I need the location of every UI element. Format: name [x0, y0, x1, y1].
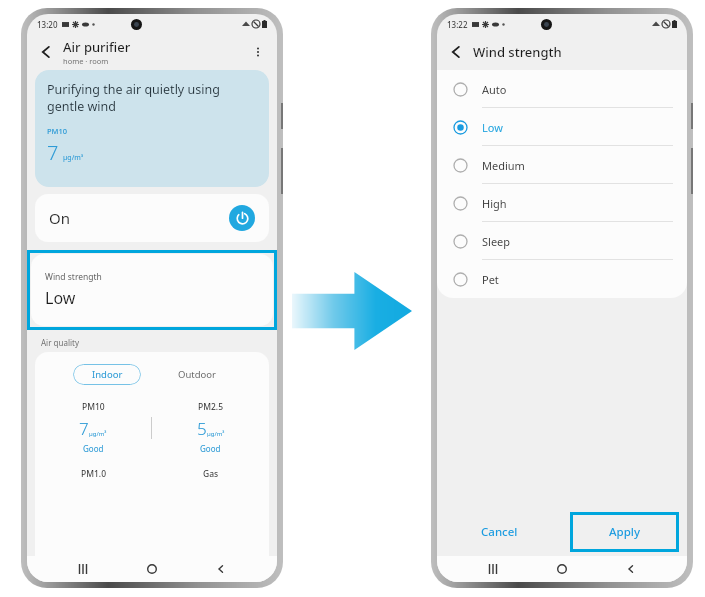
button[interactable]: Medium — [437, 146, 687, 184]
staticText: Medium — [482, 158, 525, 173]
staticText: Good — [200, 443, 221, 454]
button[interactable]: Back — [445, 41, 467, 63]
staticText: Auto — [482, 82, 507, 97]
button[interactable]: Indoor — [73, 364, 141, 385]
staticText: High — [482, 196, 507, 211]
staticText: Sleep — [482, 234, 511, 249]
button[interactable]: Pet — [437, 260, 687, 298]
staticText: Air purifier — [63, 38, 131, 56]
button[interactable]: High — [437, 184, 687, 222]
button[interactable]: Back — [35, 41, 57, 63]
staticText: 7 — [79, 417, 89, 440]
button[interactable]: Auto — [437, 70, 687, 108]
button[interactable]: Power — [229, 205, 255, 231]
staticText: 13:22 — [447, 19, 468, 30]
button[interactable]: Recents — [480, 556, 506, 582]
button[interactable]: Wind strength — [31, 254, 273, 326]
staticText: On — [49, 208, 70, 228]
staticText: Low — [45, 287, 76, 309]
staticText: Indoor — [92, 368, 123, 381]
button[interactable]: Back — [618, 556, 644, 582]
button[interactable]: Home — [549, 556, 575, 582]
staticText: µg/m³ — [63, 153, 84, 163]
button[interactable]: On — [35, 194, 269, 242]
staticText: Wind strength — [473, 43, 562, 61]
button[interactable]: Purifying the air quietly using gentle w… — [35, 70, 269, 187]
staticText: 13:20 — [37, 19, 58, 30]
staticText: Low — [482, 120, 503, 135]
staticText: PM1.0 — [81, 468, 107, 480]
button[interactable]: Home — [139, 556, 165, 582]
staticText: µg/m³ — [207, 430, 225, 438]
staticText: Pet — [482, 272, 499, 287]
staticText: 5 — [197, 417, 207, 440]
staticText: Purifying the air quietly using gentle w… — [47, 81, 220, 114]
staticText: Good — [83, 443, 104, 454]
staticText: Apply — [609, 524, 640, 540]
button[interactable]: Sleep — [437, 222, 687, 260]
button[interactable]: Back — [208, 556, 234, 582]
staticText: Cancel — [481, 524, 518, 540]
button[interactable]: Recents — [70, 556, 96, 582]
staticText: Wind strength — [45, 271, 102, 283]
button[interactable]: More options — [247, 41, 269, 63]
staticText: µg/m³ — [89, 430, 107, 438]
button[interactable]: Outdoor — [163, 364, 231, 385]
staticText: Air quality — [41, 337, 80, 348]
staticText: PM10 — [47, 126, 68, 136]
staticText: PM2.5 — [198, 401, 224, 413]
button[interactable]: Apply — [570, 512, 679, 552]
button[interactable]: Cancel — [437, 512, 562, 552]
staticText: Gas — [203, 468, 219, 480]
staticText: Outdoor — [178, 368, 216, 381]
staticText: 7 — [47, 139, 59, 166]
staticText: home · room — [63, 56, 109, 66]
button[interactable]: Low — [437, 108, 687, 146]
staticText: PM10 — [82, 401, 105, 413]
button[interactable]: Indoor — [35, 352, 269, 556]
